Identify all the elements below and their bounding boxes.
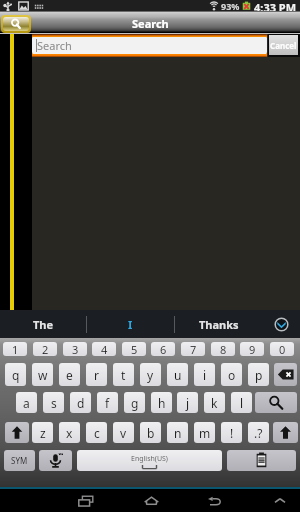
- button[interactable]: z: [32, 422, 53, 443]
- staticText: b: [147, 425, 155, 441]
- button[interactable]: Search: [3, 17, 29, 31]
- button[interactable]: Shift: [5, 422, 29, 443]
- staticText: !: [230, 425, 234, 441]
- staticText: 3: [72, 342, 79, 356]
- staticText: v: [120, 425, 127, 441]
- button[interactable]: Search: [33, 37, 266, 54]
- button[interactable]: g: [124, 392, 145, 413]
- button[interactable]: 4: [92, 342, 116, 356]
- button[interactable]: 1: [3, 342, 27, 356]
- button[interactable]: x: [59, 422, 80, 443]
- staticText: 1: [12, 342, 19, 356]
- button[interactable]: 3: [63, 342, 87, 356]
- staticText: w: [38, 367, 48, 383]
- staticText: Thanks: [199, 317, 239, 332]
- button[interactable]: k: [204, 392, 225, 413]
- button[interactable]: m: [194, 422, 215, 443]
- button[interactable]: 8: [211, 342, 235, 356]
- staticText: g: [131, 395, 139, 411]
- staticText: I: [128, 317, 133, 332]
- button[interactable]: j: [177, 392, 198, 413]
- button[interactable]: q: [5, 363, 26, 386]
- button[interactable]: Thanks: [175, 310, 262, 338]
- button[interactable]: Cancel: [269, 35, 298, 55]
- button[interactable]: .?: [248, 422, 269, 443]
- staticText: a: [23, 395, 30, 411]
- button[interactable]: Shift: [273, 422, 298, 443]
- button[interactable]: a: [16, 392, 37, 413]
- button[interactable]: Voice input: [39, 450, 72, 471]
- button[interactable]: c: [86, 422, 107, 443]
- staticText: .?: [254, 425, 263, 441]
- staticText: 6: [160, 342, 167, 356]
- staticText: q: [12, 367, 20, 383]
- staticText: p: [255, 367, 263, 383]
- staticText: Search: [132, 16, 169, 31]
- button[interactable]: b: [140, 422, 161, 443]
- staticText: The: [33, 317, 54, 332]
- button[interactable]: The: [0, 310, 86, 338]
- staticText: m: [199, 425, 211, 441]
- button[interactable]: y: [140, 363, 161, 386]
- button[interactable]: Clipboard: [227, 450, 296, 471]
- staticText: n: [174, 425, 182, 441]
- button[interactable]: Back: [194, 493, 234, 509]
- staticText: Cancel: [270, 40, 297, 51]
- staticText: r: [94, 367, 99, 383]
- staticText: l: [240, 395, 244, 411]
- button[interactable]: n: [167, 422, 188, 443]
- button[interactable]: r: [86, 363, 107, 386]
- staticText: j: [186, 395, 190, 411]
- staticText: SYM: [11, 455, 28, 466]
- staticText: c: [94, 425, 100, 441]
- button[interactable]: More suggestions: [262, 310, 300, 338]
- button[interactable]: 0: [270, 342, 294, 356]
- button[interactable]: Home: [131, 493, 171, 509]
- button[interactable]: !: [221, 422, 242, 443]
- staticText: f: [105, 395, 110, 411]
- button[interactable]: p: [248, 363, 269, 386]
- button[interactable]: d: [70, 392, 91, 413]
- staticText: English(US): [131, 454, 168, 464]
- staticText: Search: [37, 38, 72, 53]
- staticText: k: [211, 395, 218, 411]
- button[interactable]: 9: [240, 342, 264, 356]
- button[interactable]: t: [113, 363, 134, 386]
- staticText: d: [77, 395, 85, 411]
- staticText: h: [158, 395, 166, 411]
- button[interactable]: v: [113, 422, 134, 443]
- button[interactable]: 2: [33, 342, 57, 356]
- button[interactable]: h: [151, 392, 172, 413]
- staticText: x: [66, 425, 73, 441]
- button[interactable]: o: [221, 363, 242, 386]
- button[interactable]: 6: [151, 342, 175, 356]
- staticText: 4:33 PM: [254, 0, 297, 11]
- button[interactable]: SYM: [4, 450, 35, 471]
- staticText: 93%: [221, 0, 240, 11]
- staticText: o: [228, 367, 236, 383]
- button[interactable]: w: [32, 363, 53, 386]
- button[interactable]: Hide keyboard: [260, 493, 300, 509]
- staticText: y: [147, 367, 154, 383]
- button[interactable]: English(US): [77, 450, 222, 471]
- button[interactable]: Delete: [274, 363, 297, 386]
- staticText: 9: [249, 342, 256, 356]
- staticText: u: [174, 367, 182, 383]
- staticText: i: [203, 367, 207, 383]
- button[interactable]: 7: [181, 342, 205, 356]
- staticText: 4: [101, 342, 108, 356]
- button[interactable]: 5: [122, 342, 146, 356]
- staticText: 2: [42, 342, 49, 356]
- button[interactable]: Search: [255, 392, 297, 413]
- button[interactable]: s: [43, 392, 64, 413]
- button[interactable]: e: [59, 363, 80, 386]
- staticText: t: [121, 367, 126, 383]
- staticText: s: [51, 395, 57, 411]
- staticText: z: [40, 425, 46, 441]
- button[interactable]: i: [194, 363, 215, 386]
- button[interactable]: Recents: [66, 493, 106, 509]
- button[interactable]: l: [231, 392, 252, 413]
- button[interactable]: I: [87, 310, 174, 338]
- button[interactable]: f: [97, 392, 118, 413]
- button[interactable]: u: [167, 363, 188, 386]
